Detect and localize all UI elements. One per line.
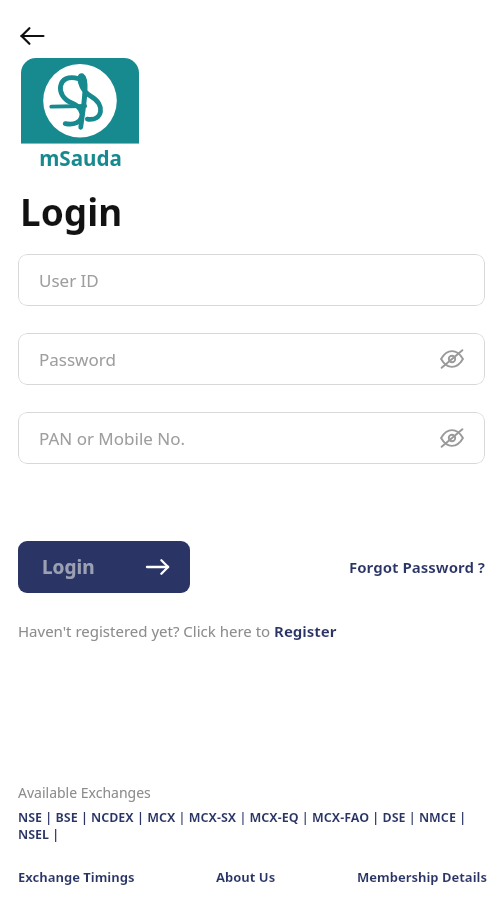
button[interactable]: Toggle visibility [437,344,467,374]
button[interactable]: About Us [216,868,276,886]
button[interactable]: Membership Details [357,868,487,886]
staticText: Password [39,348,437,371]
staticText: Login [20,186,123,236]
button[interactable]: Forgot Password ? [191,557,485,577]
staticText: Forgot Password ? [349,557,485,577]
button[interactable]: Exchange Timings [18,868,135,886]
button[interactable]: Login [18,541,190,593]
staticText: Haven't registered yet? Click here to Re… [18,621,337,641]
button[interactable]: Haven't registered yet? Click here to Re… [18,621,337,641]
staticText: Membership Details [357,868,487,886]
staticText: About Us [216,868,276,886]
button[interactable]: Back [10,14,54,58]
button[interactable]: PAN or Mobile No. [18,412,485,464]
staticText: PAN or Mobile No. [39,427,437,450]
staticText: NSE | BSE | NCDEX | MCX | MCX-SX | MCX-E… [18,809,489,843]
staticText: Exchange Timings [18,868,135,886]
staticText: mSauda [39,144,122,172]
button[interactable]: Password [18,333,485,385]
staticText: Login [42,554,95,580]
button[interactable]: User ID [18,254,485,306]
staticText: Available Exchanges [18,783,151,802]
button[interactable]: mSauda logo [21,58,139,176]
button[interactable]: Toggle visibility [437,423,467,453]
staticText: User ID [39,269,467,292]
